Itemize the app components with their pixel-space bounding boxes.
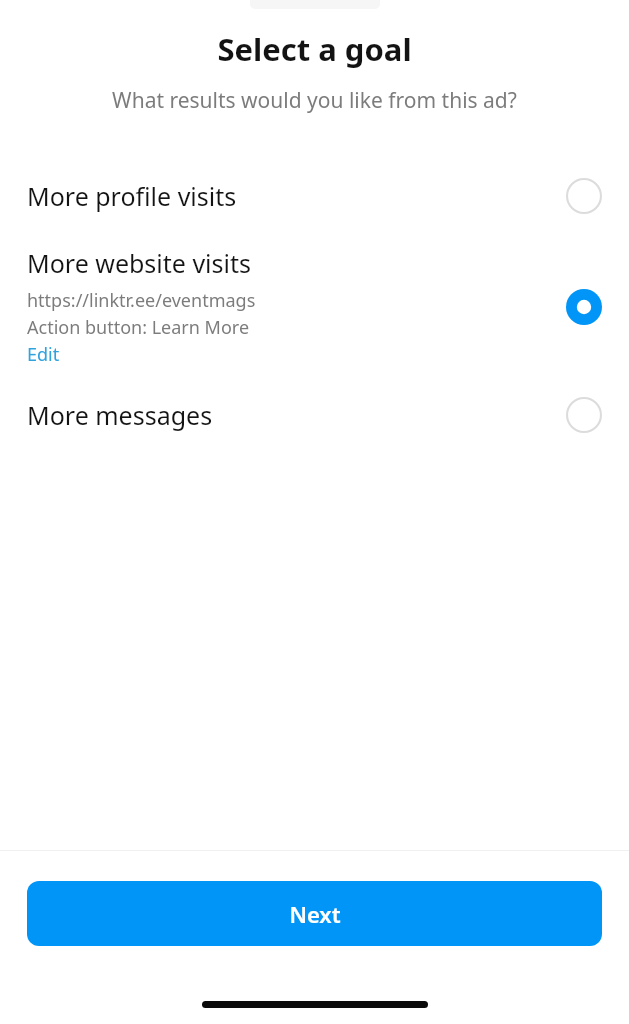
button[interactable]: Next [27,881,602,946]
button[interactable]: More messages [0,389,629,441]
button[interactable]: Select More messages [558,389,610,441]
staticText: Select a goal [0,28,629,70]
staticText: https://linktr.ee/eventmags [27,288,256,313]
staticText: More profile visits [27,179,558,213]
staticText: More messages [27,398,558,432]
button[interactable]: Select More profile visits [558,170,610,222]
staticText: More website visits [27,246,251,280]
staticText: Edit [27,342,60,367]
button[interactable]: Edit [27,342,60,367]
staticText: Next [289,899,341,929]
button[interactable]: More website visits [0,246,629,367]
staticText: What results would you like from this ad… [0,86,629,115]
button[interactable]: More website visits selected [558,281,610,333]
staticText: Action button: Learn More [27,315,250,340]
button[interactable]: More profile visits [0,170,629,222]
